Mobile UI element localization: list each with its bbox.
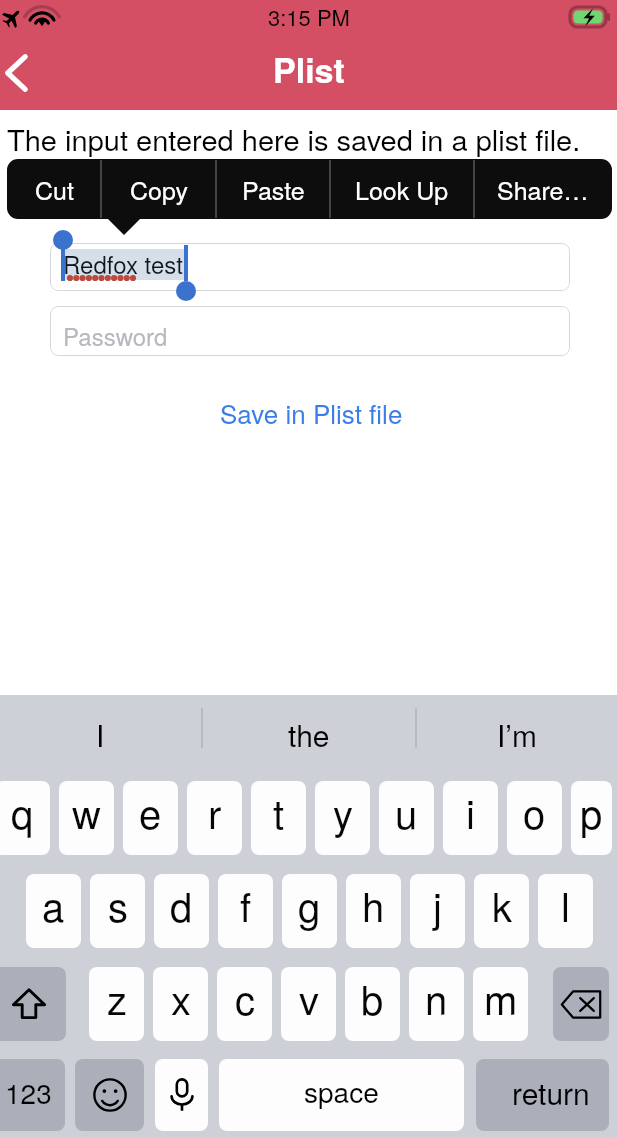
button[interactable]: c bbox=[217, 967, 272, 1041]
staticText: y bbox=[333, 783, 353, 840]
staticText: Copy bbox=[130, 171, 188, 207]
button[interactable]: Emoji bbox=[75, 1059, 144, 1131]
button[interactable]: Look Up bbox=[330, 159, 474, 219]
button[interactable]: Paste bbox=[216, 159, 330, 219]
button[interactable]: k bbox=[474, 874, 529, 948]
button[interactable]: I’m bbox=[417, 695, 617, 755]
staticText: h bbox=[362, 876, 385, 933]
staticText: m bbox=[484, 969, 518, 1026]
button[interactable]: j bbox=[410, 874, 465, 948]
button[interactable]: w bbox=[59, 781, 114, 855]
staticText: f bbox=[240, 876, 252, 933]
staticText: z bbox=[107, 969, 127, 1026]
button[interactable]: a bbox=[26, 874, 81, 948]
staticText: n bbox=[425, 969, 448, 1026]
button[interactable]: v bbox=[281, 967, 336, 1041]
button[interactable]: Shift bbox=[0, 967, 66, 1041]
button[interactable]: q bbox=[0, 781, 50, 855]
button[interactable]: return bbox=[476, 1059, 609, 1131]
button[interactable]: 123 bbox=[0, 1059, 65, 1131]
staticText: d bbox=[170, 876, 193, 933]
button[interactable]: Save in Plist file bbox=[211, 386, 412, 439]
staticText: Name bbox=[7, 157, 85, 199]
button[interactable]: Share… bbox=[474, 159, 612, 219]
staticText: Cut bbox=[35, 171, 74, 207]
staticText: I’m bbox=[497, 713, 537, 756]
button[interactable]: x bbox=[153, 967, 208, 1041]
staticText: o bbox=[523, 783, 546, 840]
staticText: j bbox=[433, 876, 442, 933]
button[interactable]: I bbox=[0, 695, 201, 755]
button[interactable]: Dictation bbox=[155, 1059, 208, 1131]
button[interactable]: the bbox=[203, 695, 415, 755]
staticText: l bbox=[561, 876, 570, 933]
staticText: g bbox=[298, 876, 321, 933]
button[interactable]: f bbox=[218, 874, 273, 948]
button[interactable]: r bbox=[187, 781, 242, 855]
button[interactable]: u bbox=[379, 781, 434, 855]
staticText: a bbox=[42, 876, 65, 933]
button[interactable]: p bbox=[571, 781, 612, 855]
button[interactable]: y bbox=[315, 781, 370, 855]
staticText: b bbox=[361, 969, 384, 1026]
button[interactable]: g bbox=[282, 874, 337, 948]
button[interactable]: l bbox=[538, 874, 593, 948]
staticText: p bbox=[580, 783, 603, 840]
button[interactable]: Backspace bbox=[553, 967, 609, 1041]
button[interactable]: d bbox=[154, 874, 209, 948]
staticText: q bbox=[11, 783, 34, 840]
button[interactable]: Redfox test bbox=[50, 243, 570, 291]
button[interactable]: o bbox=[507, 781, 562, 855]
button[interactable]: h bbox=[346, 874, 401, 948]
button[interactable]: b bbox=[345, 967, 400, 1041]
staticText: Redfox test bbox=[63, 246, 183, 280]
staticText: t bbox=[273, 783, 285, 840]
staticText: s bbox=[108, 876, 128, 933]
button[interactable]: n bbox=[409, 967, 464, 1041]
staticText: c bbox=[235, 969, 255, 1026]
staticText: Plist bbox=[273, 45, 345, 94]
button[interactable]: t bbox=[251, 781, 306, 855]
staticText: Look Up bbox=[355, 171, 449, 207]
staticText: I bbox=[96, 713, 105, 756]
staticText: w bbox=[72, 783, 101, 840]
staticText: Paste bbox=[242, 171, 305, 207]
staticText: The input entered here is saved in a pli… bbox=[7, 118, 581, 160]
staticText: the bbox=[288, 713, 330, 756]
button[interactable]: Back bbox=[0, 49, 42, 101]
staticText: u bbox=[395, 783, 418, 840]
staticText: 3:15 PM bbox=[268, 1, 350, 33]
staticText: i bbox=[466, 783, 475, 840]
staticText: Password bbox=[63, 318, 168, 352]
button[interactable]: z bbox=[89, 967, 144, 1041]
button[interactable]: Password bbox=[50, 306, 570, 356]
staticText: Share… bbox=[497, 171, 589, 207]
button[interactable]: m bbox=[473, 967, 528, 1041]
button[interactable]: i bbox=[443, 781, 498, 855]
staticText: return bbox=[512, 1071, 590, 1114]
staticText: 123 bbox=[5, 1072, 52, 1112]
button[interactable]: Copy bbox=[101, 159, 216, 219]
staticText: e bbox=[139, 783, 162, 840]
staticText: space bbox=[304, 1071, 379, 1111]
button[interactable]: s bbox=[90, 874, 145, 948]
button[interactable]: Cut bbox=[7, 159, 101, 219]
button[interactable]: e bbox=[123, 781, 178, 855]
staticText: r bbox=[208, 783, 222, 840]
button[interactable]: space bbox=[219, 1059, 464, 1131]
staticText: Save in Plist file bbox=[220, 394, 403, 431]
staticText: x bbox=[171, 969, 191, 1026]
staticText: k bbox=[492, 876, 512, 933]
staticText: v bbox=[299, 969, 319, 1026]
